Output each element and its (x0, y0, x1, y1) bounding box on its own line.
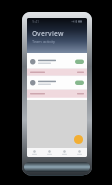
button[interactable]: Alerts (57, 148, 72, 157)
staticText: Overview (32, 29, 64, 38)
button[interactable]: Alert row (27, 69, 87, 76)
staticText: 9:41 (32, 19, 39, 24)
button[interactable]: Search (42, 148, 57, 157)
button[interactable]: Row (27, 55, 87, 68)
button[interactable]: Alert row (27, 90, 87, 98)
button[interactable]: More (72, 148, 87, 157)
button[interactable]: Home (27, 148, 42, 157)
button[interactable]: Compose (70, 131, 87, 148)
staticText: Team activity (32, 39, 55, 44)
button[interactable]: Row (27, 76, 87, 89)
